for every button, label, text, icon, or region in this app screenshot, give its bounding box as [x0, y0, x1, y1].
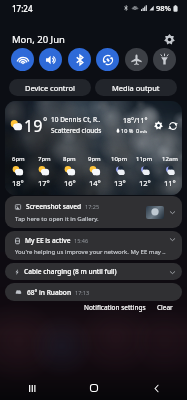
button[interactable]: Expand: [167, 267, 177, 277]
button[interactable]: Auto rotate: [96, 48, 119, 71]
button[interactable]: 19: [5, 101, 182, 195]
staticText: 9pm: [88, 155, 101, 163]
button[interactable]: Device control: [9, 79, 91, 96]
button[interactable]: Expand: [167, 234, 177, 244]
staticText: 19: [24, 115, 43, 137]
staticText: 17:25: [85, 203, 100, 210]
staticText: 11pm: [136, 155, 153, 163]
staticText: My EE is active: [25, 236, 71, 245]
staticText: You're helping us improve your network. …: [15, 248, 166, 256]
staticText: Clear: [157, 303, 173, 312]
staticText: 10 Dennis Ct, R..: [51, 115, 101, 124]
staticText: 11°: [164, 178, 176, 188]
staticText: 14°: [89, 178, 101, 188]
staticText: 0: [136, 127, 140, 134]
staticText: °: [43, 114, 48, 128]
button[interactable]: Screenshot saved: [5, 196, 182, 228]
staticText: Notification settings: [84, 303, 146, 312]
staticText: Device control: [25, 83, 75, 93]
button[interactable]: Back: [125, 375, 187, 400]
button[interactable]: Cable charging (8 m until full): [5, 263, 182, 280]
staticText: 17:24: [12, 3, 33, 14]
staticText: Media output: [112, 83, 160, 93]
button[interactable]: Media output: [95, 79, 177, 96]
staticText: 12°: [139, 178, 151, 188]
staticText: 10 %: [121, 127, 134, 134]
button[interactable]: Refresh: [167, 120, 178, 131]
button[interactable]: Notification settings: [82, 302, 148, 313]
button[interactable]: Bluetooth: [68, 48, 91, 71]
button[interactable]: Home: [63, 375, 125, 400]
staticText: 15:46: [74, 237, 89, 244]
button[interactable]: Weather settings: [153, 120, 164, 131]
staticText: 18°: [12, 178, 24, 188]
staticText: Mon, 20 Jun: [12, 33, 65, 46]
staticText: 18°/11°: [123, 116, 148, 126]
staticText: 68° in Ruabon: [27, 288, 72, 297]
button[interactable]: Settings: [161, 31, 177, 47]
staticText: m/s: [140, 129, 148, 134]
staticText: Cable charging (8 m until full): [24, 267, 117, 276]
staticText: 98%: [156, 3, 171, 13]
staticText: 6pm: [12, 155, 25, 163]
staticText: 12am: [162, 155, 178, 163]
button[interactable]: Flight mode: [125, 48, 148, 71]
staticText: Scattered clouds: [51, 126, 102, 135]
button[interactable]: Recents: [0, 375, 63, 400]
button[interactable]: Sound: [39, 48, 62, 71]
staticText: Screenshot saved: [26, 202, 82, 211]
button[interactable]: Clear: [155, 302, 175, 313]
button[interactable]: My EE is active: [5, 231, 182, 260]
staticText: 10pm: [111, 155, 128, 163]
staticText: 13°: [114, 178, 126, 188]
button[interactable]: Expand: [167, 207, 177, 217]
staticText: 17°: [38, 178, 50, 188]
staticText: 7pm: [38, 155, 51, 163]
staticText: 17:13: [75, 289, 90, 296]
staticText: Tap here to open it in Gallery.: [15, 214, 99, 222]
staticText: 16°: [64, 178, 76, 188]
button[interactable]: Flashlight: [153, 48, 176, 71]
staticText: 8pm: [63, 155, 76, 163]
button[interactable]: 68° in Ruabon: [5, 283, 182, 301]
button[interactable]: Wi-Fi: [11, 48, 34, 71]
